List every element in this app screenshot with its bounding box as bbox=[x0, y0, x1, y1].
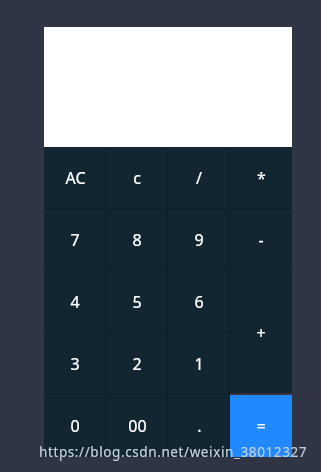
button[interactable]: 0 bbox=[44, 395, 106, 457]
button[interactable]: Divide bbox=[168, 147, 230, 209]
button[interactable]: 1 bbox=[168, 333, 230, 395]
button[interactable]: 00 bbox=[106, 395, 168, 457]
button[interactable]: c bbox=[106, 147, 168, 209]
staticText: c bbox=[133, 167, 141, 189]
staticText: 00 bbox=[128, 415, 147, 437]
staticText: 4 bbox=[70, 291, 80, 313]
button[interactable]: 8 bbox=[106, 209, 168, 271]
button[interactable]: 4 bbox=[44, 271, 106, 333]
button[interactable]: Decimal point bbox=[168, 395, 230, 457]
staticText: . bbox=[197, 415, 202, 437]
staticText: 7 bbox=[70, 229, 80, 251]
button[interactable]: 3 bbox=[44, 333, 106, 395]
staticText: 5 bbox=[132, 291, 142, 313]
button[interactable]: AC bbox=[44, 147, 106, 209]
staticText: 9 bbox=[194, 229, 204, 251]
staticText: 3 bbox=[70, 353, 80, 375]
staticText: 8 bbox=[132, 229, 142, 251]
staticText: https://blog.csdn.net/weixin_38012327 bbox=[39, 443, 308, 461]
staticText: 2 bbox=[132, 353, 142, 375]
staticText: / bbox=[196, 167, 202, 189]
staticText: AC bbox=[65, 167, 86, 189]
staticText: 0 bbox=[70, 415, 80, 437]
staticText: = bbox=[256, 415, 266, 437]
staticText: 6 bbox=[194, 291, 204, 313]
button[interactable]: Equals bbox=[230, 395, 292, 457]
staticText: 1 bbox=[194, 353, 204, 375]
button[interactable]: Minus bbox=[230, 209, 292, 271]
staticText: * bbox=[257, 167, 266, 189]
staticText: - bbox=[258, 229, 264, 251]
staticText: + bbox=[256, 322, 266, 344]
button[interactable]: 2 bbox=[106, 333, 168, 395]
button[interactable]: Plus bbox=[230, 271, 292, 395]
button[interactable]: Multiply bbox=[230, 147, 292, 209]
button[interactable]: 6 bbox=[168, 271, 230, 333]
button[interactable]: 9 bbox=[168, 209, 230, 271]
button[interactable]: 5 bbox=[106, 271, 168, 333]
button[interactable]: 7 bbox=[44, 209, 106, 271]
